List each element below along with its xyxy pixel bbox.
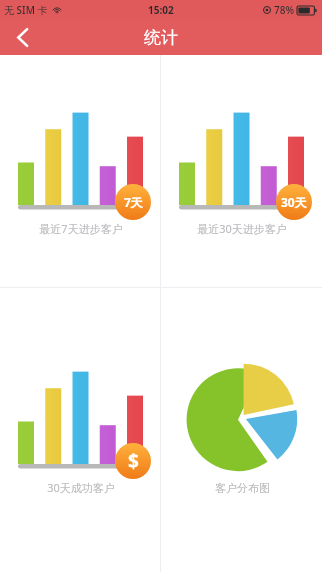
staticText: 30天成功客户 [47, 480, 115, 495]
staticText: 最近7天进步客户 [39, 221, 123, 236]
staticText: $ [128, 448, 139, 474]
staticText: 78% [274, 3, 294, 17]
staticText: 30天 [281, 194, 307, 210]
button[interactable]: 30天 [161, 55, 322, 287]
staticText: 最近30天进步客户 [197, 221, 287, 236]
button[interactable]: 客户分布图 [161, 288, 322, 572]
staticText: 15:02 [148, 3, 174, 17]
button[interactable]: 7天 [0, 55, 160, 287]
staticText: 7天 [124, 194, 143, 210]
staticText: 客户分布图 [215, 481, 270, 495]
staticText: 统计 [144, 27, 178, 48]
staticText: 无 SIM 卡 [4, 3, 48, 17]
button[interactable]: $ [0, 288, 160, 572]
button[interactable]: Back [0, 20, 44, 55]
